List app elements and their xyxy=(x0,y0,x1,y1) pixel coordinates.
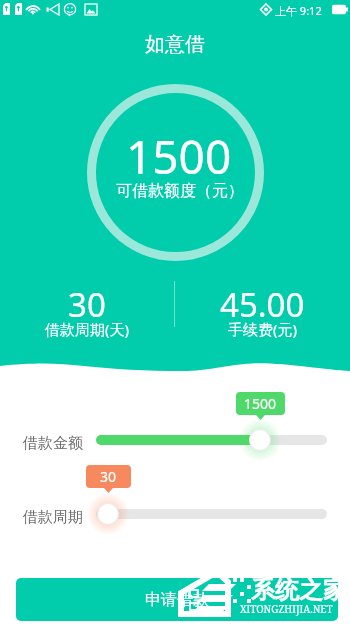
staticText: 借款金额 xyxy=(23,434,83,453)
staticText: 如意借 xyxy=(145,32,205,57)
button[interactable]: 申请借款 xyxy=(16,578,338,621)
staticText: 借款周期 xyxy=(23,508,83,527)
staticText: 手续费(元) xyxy=(228,319,298,339)
staticText: 借款周期(天) xyxy=(45,319,130,339)
staticText: 可借款额度（元） xyxy=(116,181,244,201)
staticText: 30 xyxy=(68,282,106,327)
button[interactable]: 借款金额 xyxy=(249,429,271,451)
button[interactable]: 借款周期 xyxy=(97,503,119,525)
staticText: 申请借款 xyxy=(145,590,209,610)
staticText: 上午 9:12 xyxy=(275,3,322,18)
staticText: XITONGZHIJIA.NET xyxy=(240,602,333,616)
staticText: 30 xyxy=(100,467,117,486)
staticText: 1500 xyxy=(244,394,277,413)
staticText: 45.00 xyxy=(220,282,305,327)
staticText: 系统之家 xyxy=(251,575,347,605)
staticText: 1500 xyxy=(126,125,232,188)
